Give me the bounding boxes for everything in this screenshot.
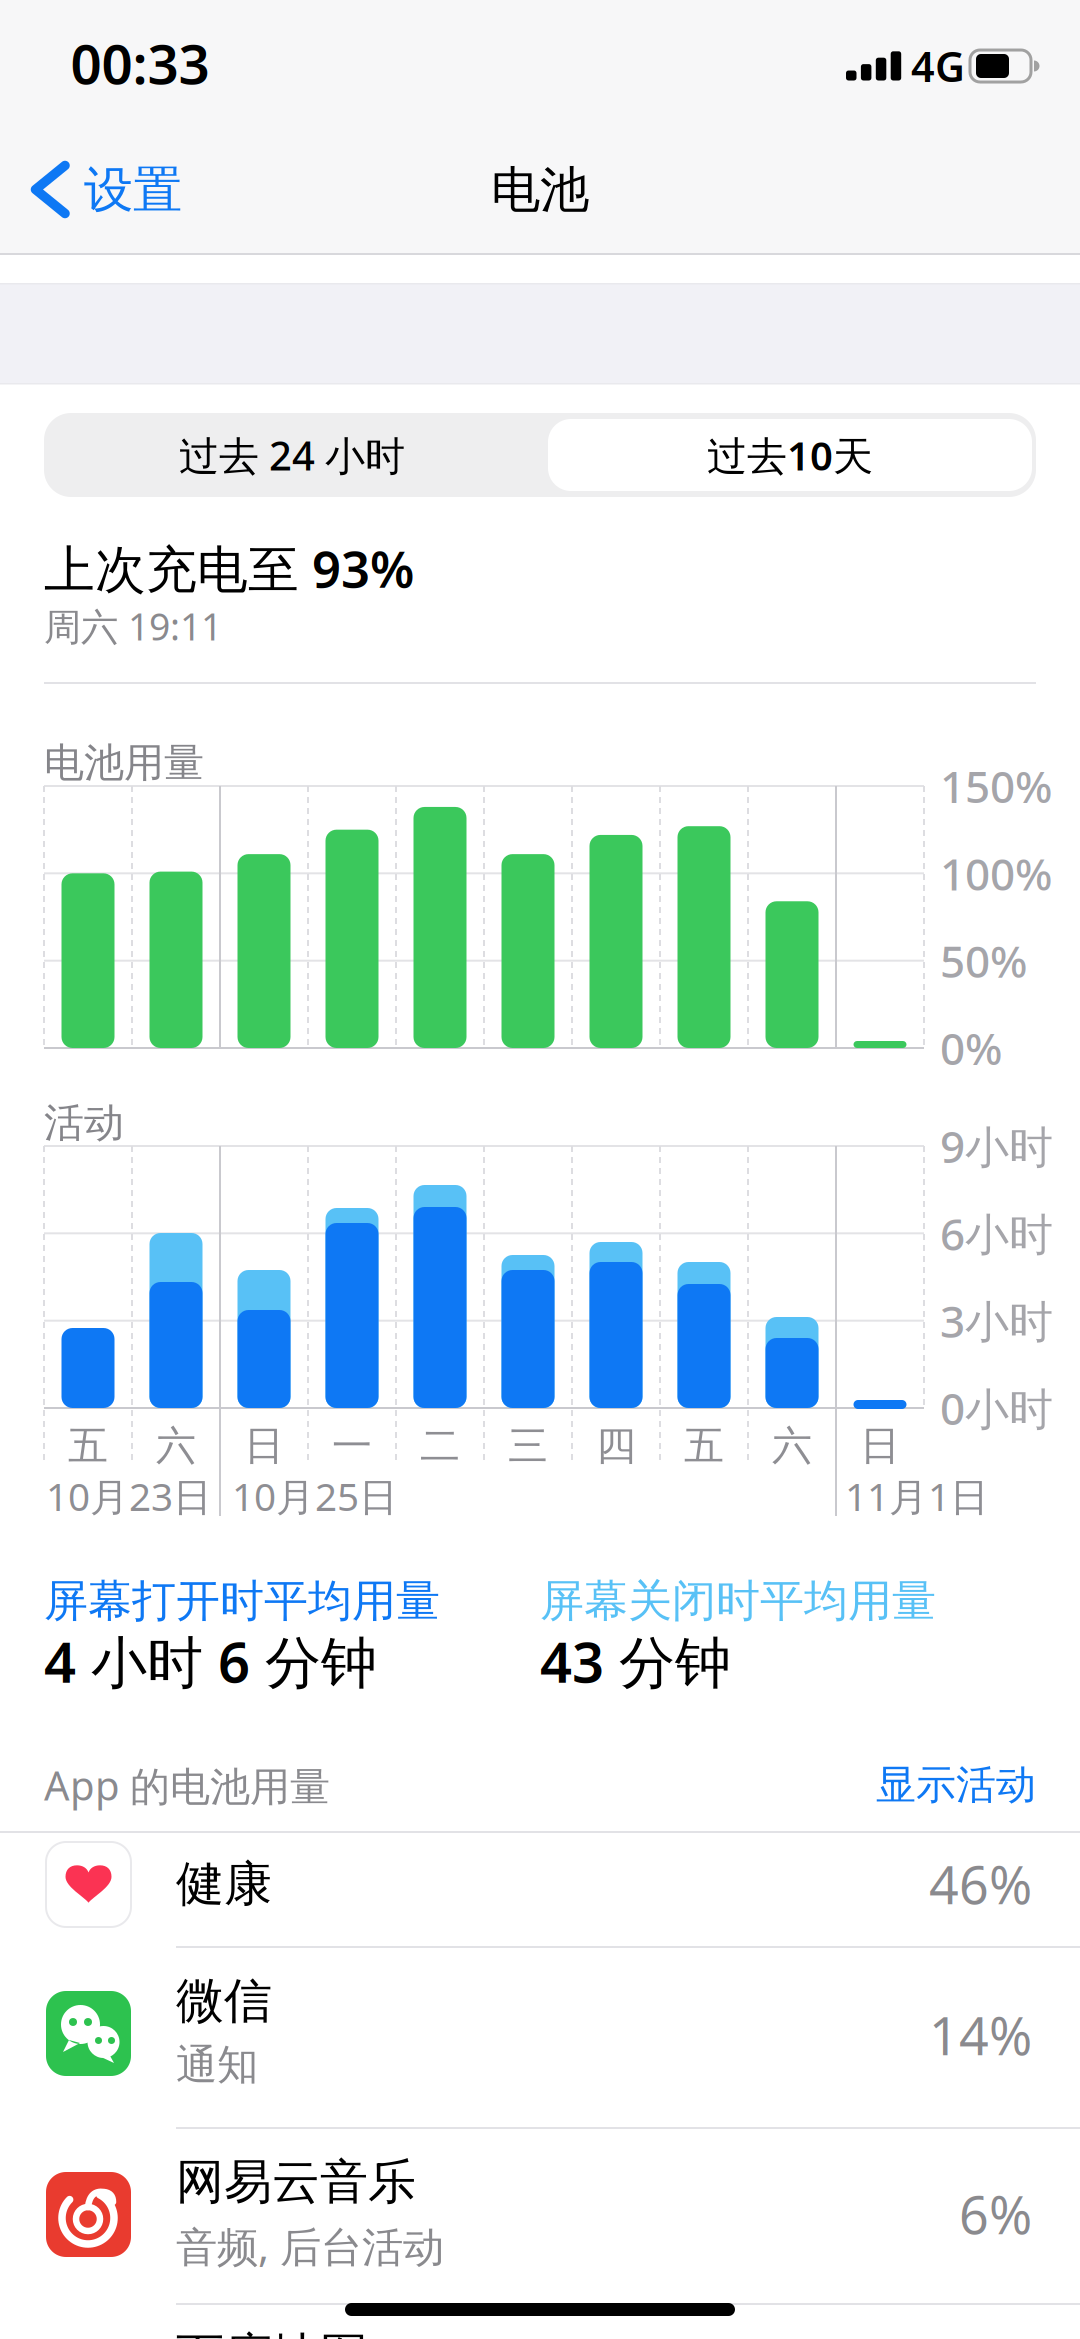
staticText: 3小时	[940, 1291, 1053, 1350]
staticText: 电池用量	[44, 738, 204, 787]
staticText: 00:33	[70, 27, 209, 99]
staticText: App 的电池用量	[44, 1758, 330, 1812]
staticText: 电池	[491, 160, 589, 220]
staticText: 三	[508, 1421, 548, 1470]
staticText: 上次充电至 93%	[44, 534, 414, 602]
staticText: 过去 24 小时	[179, 428, 405, 481]
staticText: 43 分钟	[540, 1624, 731, 1698]
staticText: 100%	[940, 844, 1052, 902]
staticText: 4G	[911, 39, 965, 93]
staticText: 46%	[929, 1849, 1032, 1919]
staticText: 二	[420, 1421, 460, 1470]
staticText: 五	[684, 1421, 724, 1470]
staticText: 通知	[176, 2040, 258, 2090]
staticText: 一	[332, 1421, 372, 1470]
staticText: 0小时	[940, 1379, 1053, 1437]
staticText: 健康	[176, 1854, 272, 1913]
staticText: 音频, 后台活动	[176, 2219, 444, 2273]
staticText: 6%	[959, 2179, 1032, 2249]
staticText: 0%	[940, 1019, 1002, 1077]
staticText: 日	[860, 1421, 900, 1470]
staticText: 周六 19:11	[44, 601, 222, 651]
staticText: 11月1日	[845, 1470, 989, 1522]
staticText: 五	[68, 1421, 108, 1470]
staticText: 4 小时 6 分钟	[44, 1624, 377, 1698]
staticText: 设置	[84, 160, 182, 220]
staticText: 六	[772, 1421, 812, 1470]
staticText: 14%	[929, 2000, 1032, 2070]
staticText: 网易云音乐	[176, 2152, 416, 2211]
staticText: 屏幕打开时平均用量	[44, 1574, 440, 1628]
staticText: 日	[244, 1421, 284, 1470]
staticText: 10月23日	[46, 1470, 212, 1522]
staticText: 显示活动	[876, 1760, 1036, 1809]
staticText: 50%	[940, 931, 1027, 990]
staticText: 四	[596, 1421, 636, 1470]
staticText: 六	[156, 1421, 196, 1470]
staticText: 150%	[940, 757, 1052, 815]
staticText: 屏幕关闭时平均用量	[540, 1574, 936, 1628]
staticText: 9小时	[940, 1117, 1053, 1175]
staticText: 过去10天	[707, 428, 873, 481]
staticText: 10月25日	[232, 1470, 398, 1522]
staticText: 百度地图	[176, 2326, 368, 2339]
staticText: 微信	[176, 1971, 272, 2030]
staticText: 活动	[44, 1098, 124, 1147]
staticText: 6小时	[940, 1204, 1053, 1262]
